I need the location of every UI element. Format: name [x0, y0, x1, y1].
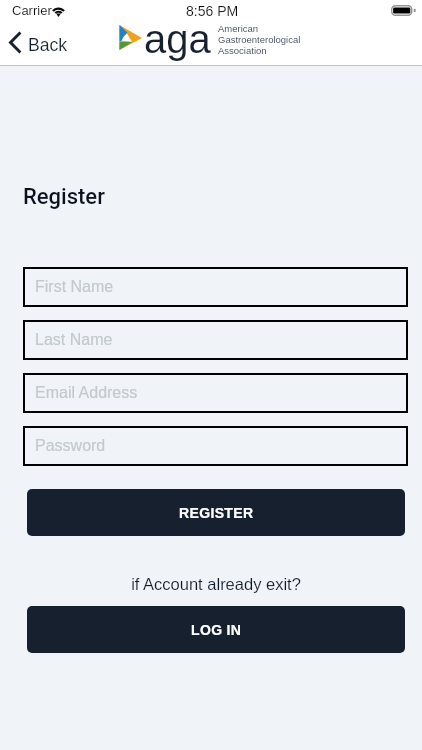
- staticText: Password: [35, 437, 106, 455]
- staticText: First Name: [35, 278, 114, 296]
- staticText: Back: [28, 35, 68, 55]
- staticText: REGISTER: [179, 505, 254, 521]
- staticText: Email Address: [35, 384, 138, 402]
- staticText: Register: [23, 184, 105, 210]
- staticText: LOG IN: [191, 622, 242, 638]
- button[interactable]: Last Name: [23, 320, 408, 360]
- staticText: Association: [218, 45, 267, 56]
- button[interactable]: LOG IN: [27, 606, 405, 653]
- button[interactable]: Password: [23, 426, 408, 466]
- button[interactable]: First Name: [23, 267, 408, 307]
- staticText: if Account already exit?: [5, 575, 422, 593]
- other: Wi-Fi: [51, 3, 66, 16]
- staticText: Last Name: [35, 331, 113, 349]
- staticText: American: [218, 23, 259, 34]
- staticText: 8:56 PM: [186, 3, 239, 19]
- other: Battery: [391, 5, 416, 16]
- staticText: Gastroenterological: [218, 34, 301, 45]
- staticText: aga: [144, 17, 211, 62]
- staticText: Carrier: [12, 3, 52, 18]
- button[interactable]: REGISTER: [27, 489, 405, 536]
- button[interactable]: Email Address: [23, 373, 408, 413]
- button[interactable]: Back: [3, 29, 78, 58]
